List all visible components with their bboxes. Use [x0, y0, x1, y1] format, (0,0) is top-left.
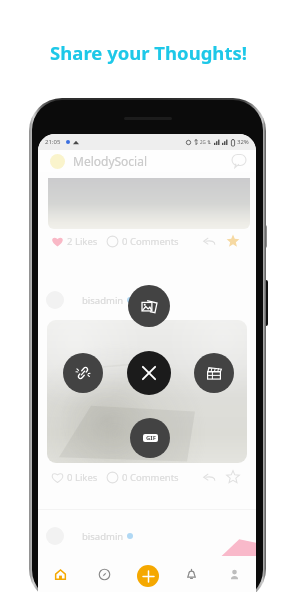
- staticText: 32%: [237, 138, 249, 146]
- staticText: 0 Likes: [67, 471, 98, 484]
- button[interactable]: Notifications: [178, 561, 204, 587]
- button[interactable]: Add link: [63, 353, 103, 393]
- staticText: 0 Comments: [122, 235, 179, 248]
- button[interactable]: Add photo: [128, 285, 170, 327]
- button[interactable]: Share: [202, 234, 216, 248]
- button[interactable]: Share: [202, 470, 216, 484]
- button[interactable]: Add video: [194, 353, 234, 393]
- staticText: MelodySocial: [73, 153, 148, 169]
- button[interactable]: Explore: [91, 561, 117, 587]
- staticText: bisadmin: [82, 294, 124, 307]
- staticText: Share your Thoughts!: [50, 40, 247, 65]
- staticText: 2G: [200, 139, 206, 145]
- staticText: 2 Likes: [67, 235, 98, 248]
- button[interactable]: Create post: [137, 565, 159, 587]
- staticText: 0 Comments: [122, 471, 179, 484]
- staticText: 21:05: [45, 138, 61, 146]
- button[interactable]: 0 Comments: [106, 235, 179, 248]
- staticText: ⇅: [207, 139, 212, 145]
- staticText: GIF: [146, 434, 156, 442]
- button[interactable]: Add GIF: [130, 418, 170, 458]
- button[interactable]: Profile: [221, 561, 247, 587]
- button[interactable]: 2 Likes: [51, 235, 98, 248]
- staticText: bisadmin: [82, 530, 124, 543]
- button[interactable]: 0 Comments: [106, 471, 179, 484]
- button[interactable]: Bookmark: [226, 470, 240, 484]
- button[interactable]: Bookmark: [226, 234, 240, 248]
- button[interactable]: Messages: [231, 153, 247, 169]
- button[interactable]: Close: [127, 351, 171, 395]
- button[interactable]: 0 Likes: [51, 471, 98, 484]
- button[interactable]: Home: [47, 561, 73, 587]
